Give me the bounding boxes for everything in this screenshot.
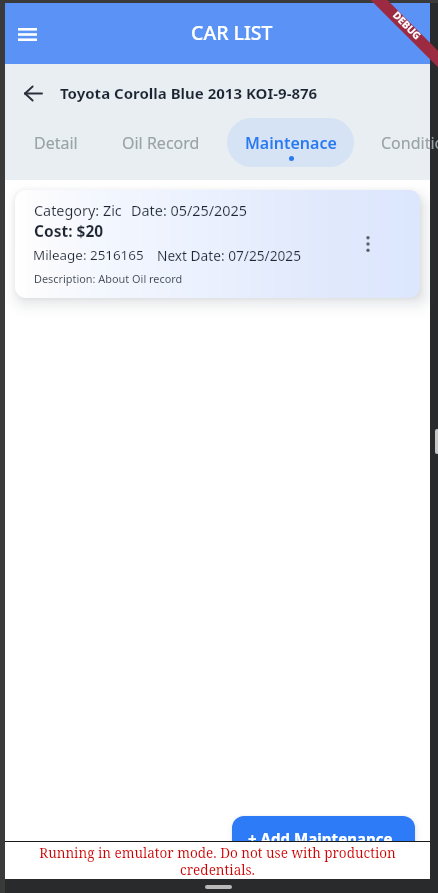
staticText: Date: 05/25/2025 xyxy=(131,201,248,221)
staticText: Next Date: 07/25/2025 xyxy=(157,246,301,265)
button[interactable]: Category: Zic xyxy=(15,190,420,298)
staticText: Detail xyxy=(34,132,78,154)
staticText: + Add Maintenance xyxy=(248,829,393,850)
button[interactable]: + Add Maintenance xyxy=(232,816,415,864)
staticText: CAR LIST xyxy=(191,19,273,46)
staticText: Maintenace xyxy=(245,132,337,154)
staticText: Toyota Corolla Blue 2013 KOI-9-876 xyxy=(60,83,318,103)
staticText: Condition xyxy=(381,132,438,154)
button[interactable]: Menu xyxy=(5,12,49,56)
button[interactable]: Condition xyxy=(348,117,438,174)
staticText: Oil Record xyxy=(122,132,200,154)
staticText: Running in emulator mode. Do not use wit… xyxy=(13,844,422,879)
staticText: Cost: $20 xyxy=(34,220,104,241)
button[interactable]: Maintenace xyxy=(221,117,361,174)
button[interactable]: More options xyxy=(354,230,382,258)
staticText: Mileage: 2516165 xyxy=(33,246,144,264)
button[interactable]: Detail xyxy=(0,117,126,174)
button[interactable]: Oil Record xyxy=(91,117,231,174)
staticText: Description: About Oil record xyxy=(34,271,183,286)
button[interactable]: Back xyxy=(11,71,55,115)
staticText: DEBUG xyxy=(390,8,425,43)
staticText: Category: Zic xyxy=(34,201,122,221)
